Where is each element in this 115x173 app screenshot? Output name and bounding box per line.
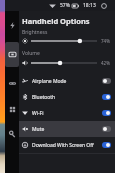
staticText: Volume <box>22 50 40 57</box>
button[interactable]: Controller <box>5 71 19 96</box>
button[interactable]: Settings <box>5 122 19 147</box>
button[interactable]: Airplane Mode <box>19 73 115 89</box>
button[interactable]: Download With Screen Off <box>19 137 115 153</box>
staticText: Mute <box>32 126 100 133</box>
staticText: Download With Screen Off <box>32 142 100 149</box>
button[interactable]: Display <box>5 42 19 67</box>
staticText: 74% <box>101 38 110 44</box>
button[interactable]: Apps <box>5 97 19 122</box>
button[interactable]: Mute <box>19 121 115 137</box>
staticText: 57% <box>60 2 70 9</box>
staticText: Wi-Fi <box>32 110 100 117</box>
staticText: Airplane Mode <box>32 78 100 85</box>
button[interactable]: Bluetooth <box>19 89 115 105</box>
button[interactable]: Power <box>5 13 19 38</box>
staticText: Brightness <box>22 29 48 36</box>
staticText: 18:13 <box>83 2 96 9</box>
staticText: Handheld Options <box>22 16 90 26</box>
staticText: 42% <box>101 60 110 66</box>
staticText: Bluetooth <box>32 94 100 101</box>
button[interactable]: Wi-Fi <box>19 105 115 121</box>
